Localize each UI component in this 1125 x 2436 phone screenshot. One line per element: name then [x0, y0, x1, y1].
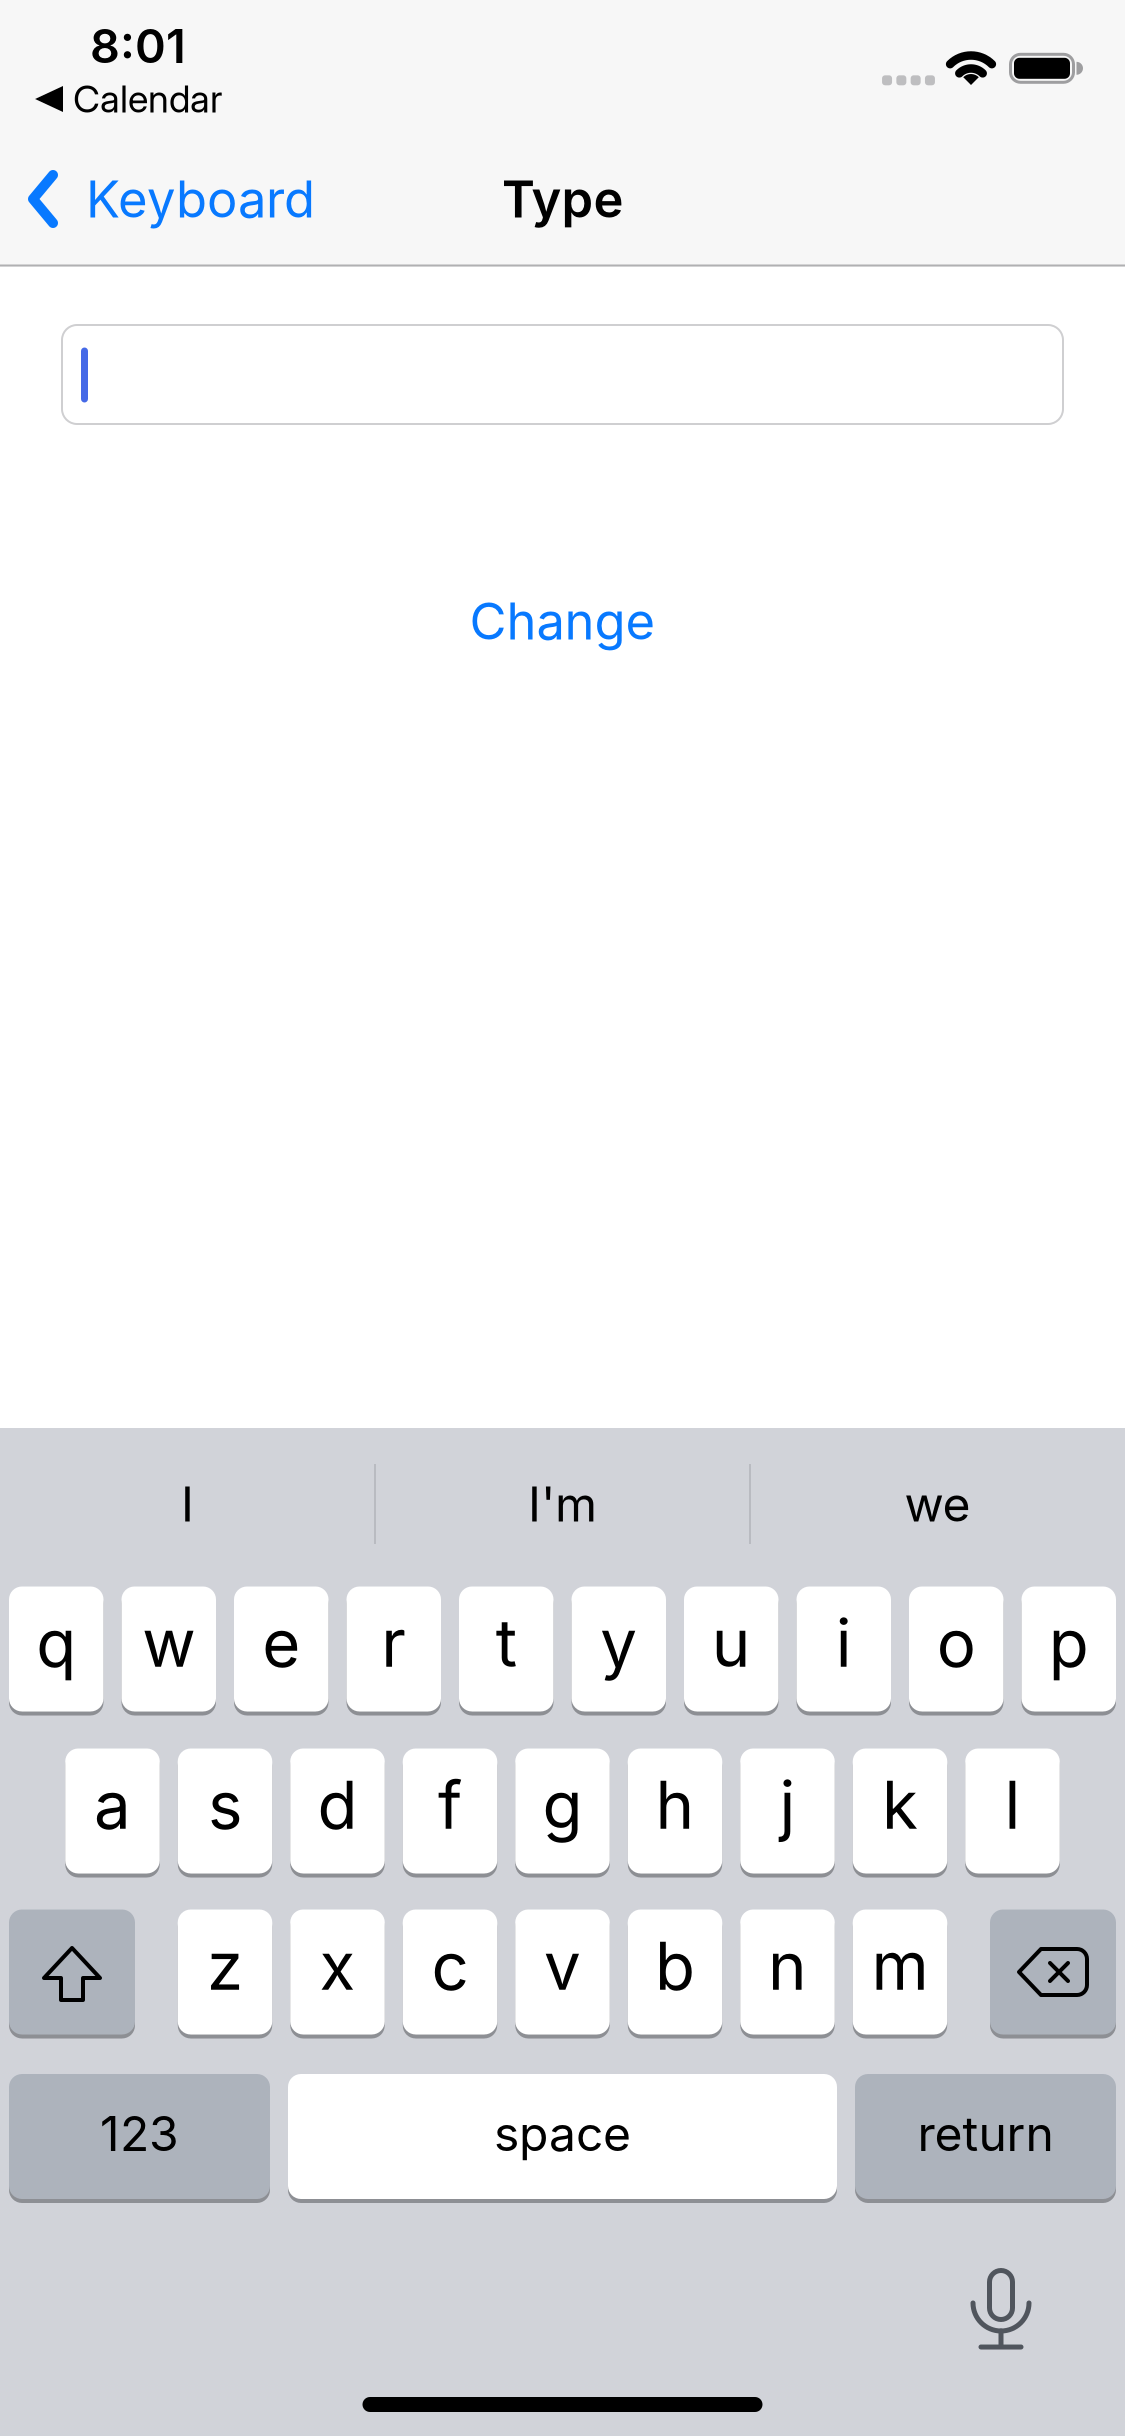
staticText: Change [469, 591, 655, 651]
staticText: y [600, 1604, 637, 1682]
staticText: I [181, 1476, 194, 1532]
button[interactable]: I [7, 1429, 367, 1579]
button[interactable]: a [65, 1748, 160, 1873]
staticText: p [1049, 1604, 1089, 1682]
staticText: b [655, 1927, 695, 2005]
button[interactable]: Shift [9, 1909, 135, 2034]
button[interactable]: i [796, 1586, 891, 1711]
button[interactable]: 123 [9, 2074, 270, 2199]
button[interactable]: k [853, 1748, 947, 1873]
button[interactable]: d [290, 1748, 385, 1873]
staticText: l [1004, 1766, 1020, 1844]
button[interactable]: q [9, 1586, 103, 1711]
staticText: q [36, 1604, 76, 1682]
staticText: v [544, 1927, 581, 2005]
button[interactable]: w [121, 1586, 216, 1711]
staticText: h [655, 1766, 694, 1844]
staticText: I'm [528, 1476, 597, 1532]
staticText: e [262, 1604, 300, 1682]
button[interactable]: g [515, 1748, 610, 1873]
button[interactable]: v [515, 1909, 610, 2034]
button[interactable]: I'm [382, 1429, 742, 1579]
staticText: j [779, 1766, 795, 1844]
staticText: u [712, 1604, 751, 1682]
staticText: s [208, 1766, 242, 1844]
button[interactable]: Back to Calendar [0, 71, 400, 127]
staticText: c [431, 1927, 468, 2005]
button[interactable]: m [853, 1909, 947, 2034]
button[interactable]: o [909, 1586, 1003, 1711]
button[interactable]: r [346, 1586, 441, 1711]
button[interactable]: Delete [990, 1909, 1116, 2034]
button[interactable]: x [290, 1909, 385, 2034]
staticText: t [496, 1604, 517, 1682]
button[interactable]: we [757, 1429, 1117, 1579]
button[interactable]: e [234, 1586, 328, 1711]
button[interactable]: p [1021, 1586, 1116, 1711]
button[interactable]: n [740, 1909, 835, 2034]
staticText: n [768, 1927, 807, 2005]
button[interactable]: Change [432, 581, 692, 661]
staticText: we [904, 1476, 970, 1532]
button[interactable]: f [403, 1748, 497, 1873]
button[interactable]: b [628, 1909, 722, 2034]
button[interactable]: space [288, 2074, 837, 2199]
staticText: r [381, 1604, 406, 1682]
button[interactable]: l [965, 1748, 1060, 1873]
button[interactable]: Dictation [970, 2267, 1032, 2355]
staticText: o [937, 1604, 976, 1682]
button[interactable]: y [571, 1586, 666, 1711]
staticText: Type [501, 169, 623, 229]
staticText: a [94, 1766, 131, 1844]
button[interactable]: z [178, 1909, 272, 2034]
staticText: g [542, 1766, 582, 1844]
staticText: m [871, 1927, 928, 2005]
button[interactable]: s [178, 1748, 272, 1873]
button[interactable]: j [740, 1748, 835, 1873]
staticText: Calendar [73, 77, 222, 121]
button[interactable]: c [403, 1909, 497, 2034]
staticText: return [917, 2105, 1053, 2162]
staticText: d [317, 1766, 357, 1844]
button[interactable]: t [459, 1586, 553, 1711]
staticText: Keyboard [86, 169, 315, 229]
button[interactable]: Back to Keyboard [0, 159, 420, 239]
button[interactable]: return [855, 2074, 1116, 2199]
staticText: space [494, 2105, 631, 2162]
staticText: w [142, 1604, 195, 1682]
staticText: i [836, 1604, 852, 1682]
button[interactable]: h [628, 1748, 722, 1873]
staticText: 8:01 [90, 18, 186, 74]
staticText: 123 [100, 2105, 179, 2162]
staticText: z [207, 1927, 243, 2005]
staticText: f [438, 1766, 462, 1844]
staticText: x [319, 1927, 355, 2005]
staticText: k [882, 1766, 918, 1844]
button[interactable]: u [684, 1586, 778, 1711]
